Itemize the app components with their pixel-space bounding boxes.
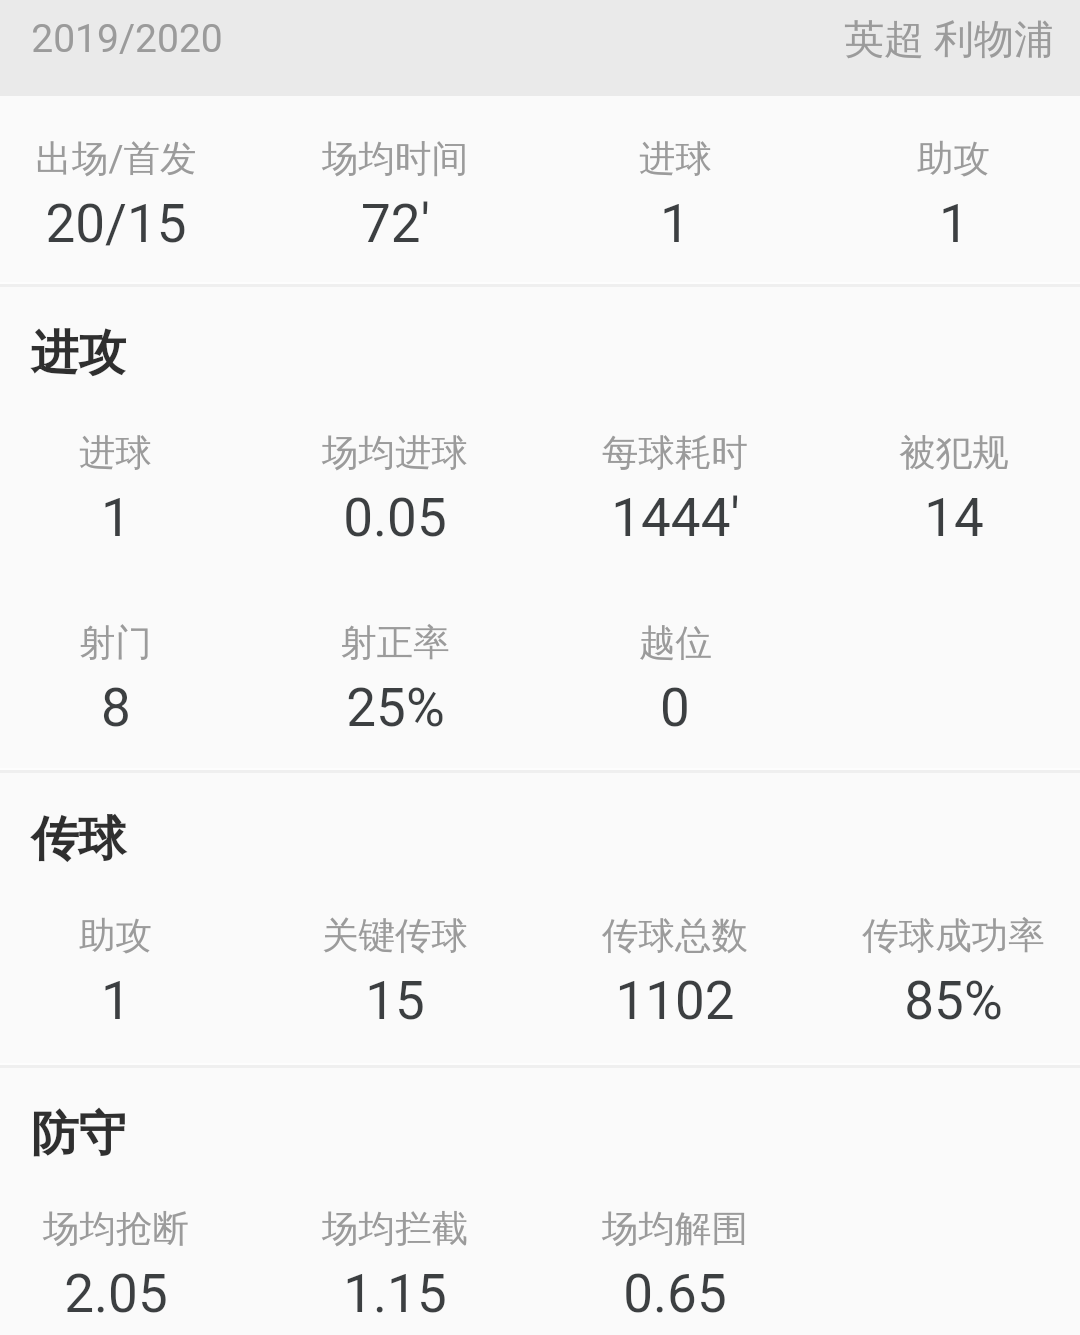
button[interactable]: 2019/2020 bbox=[0, 0, 247, 78]
staticText: 1 bbox=[660, 193, 690, 255]
staticText: 进球 bbox=[79, 430, 152, 476]
staticText: 每球耗时 bbox=[602, 430, 748, 476]
staticText: 场均解围 bbox=[602, 1206, 748, 1252]
staticText: 14 bbox=[924, 487, 984, 549]
staticText: 1102 bbox=[615, 970, 735, 1032]
staticText: 8 bbox=[101, 677, 131, 739]
staticText: 2.05 bbox=[64, 1263, 168, 1325]
staticText: 传球成功率 bbox=[862, 913, 1045, 959]
staticText: 防守 bbox=[31, 1104, 126, 1164]
staticText: 关键传球 bbox=[322, 913, 468, 959]
staticText: 1 bbox=[939, 193, 969, 255]
staticText: 传球 bbox=[31, 809, 126, 869]
staticText: 15 bbox=[365, 970, 425, 1032]
staticText: 进球 bbox=[639, 136, 712, 182]
staticText: 越位 bbox=[639, 620, 712, 666]
staticText: 英超 利物浦 bbox=[844, 14, 1054, 64]
staticText: 85% bbox=[904, 970, 1003, 1032]
staticText: 0.65 bbox=[623, 1263, 727, 1325]
staticText: 25% bbox=[346, 677, 445, 739]
staticText: 72' bbox=[361, 193, 430, 255]
staticText: 射门 bbox=[79, 620, 152, 666]
staticText: 2019/2020 bbox=[31, 16, 223, 62]
staticText: 被犯规 bbox=[899, 430, 1009, 476]
staticText: 助攻 bbox=[917, 136, 990, 182]
staticText: 1 bbox=[101, 970, 131, 1032]
staticText: 场均进球 bbox=[322, 430, 468, 476]
staticText: 场均时间 bbox=[322, 136, 468, 182]
button[interactable]: 英超 利物浦 bbox=[820, 0, 1080, 78]
staticText: 场均抢断 bbox=[43, 1206, 189, 1252]
staticText: 0 bbox=[660, 677, 690, 739]
staticText: 20/15 bbox=[45, 193, 187, 255]
staticText: 1.15 bbox=[343, 1263, 447, 1325]
staticText: 0.05 bbox=[343, 487, 447, 549]
staticText: 出场/首发 bbox=[35, 136, 197, 182]
staticText: 场均拦截 bbox=[322, 1206, 468, 1252]
staticText: 1 bbox=[101, 487, 131, 549]
staticText: 传球总数 bbox=[602, 913, 748, 959]
staticText: 进攻 bbox=[31, 323, 126, 383]
staticText: 助攻 bbox=[79, 913, 152, 959]
staticText: 1444' bbox=[611, 487, 740, 549]
staticText: 射正率 bbox=[340, 620, 450, 666]
